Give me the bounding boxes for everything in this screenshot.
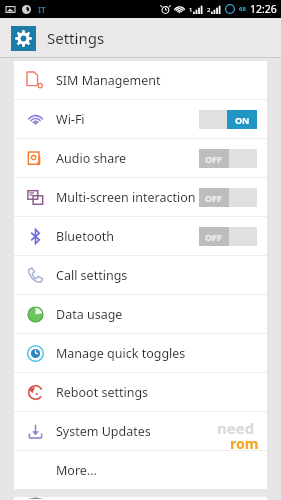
staticText: IT: [38, 4, 46, 15]
staticText: System Updates: [56, 423, 151, 440]
button[interactable]: SIM Management: [14, 61, 267, 100]
staticText: 1: [189, 6, 193, 14]
staticText: Call settings: [56, 267, 128, 284]
staticText: ON: [235, 114, 250, 126]
button[interactable]: Reboot settings: [14, 373, 267, 412]
staticText: Audio share: [56, 150, 127, 167]
staticText: Reboot settings: [56, 384, 149, 401]
staticText: More...: [56, 462, 97, 479]
button[interactable]: System Updates: [14, 412, 267, 451]
staticText: Data usage: [56, 306, 123, 323]
staticText: Manage quick toggles: [56, 345, 186, 362]
staticText: need: [217, 418, 255, 438]
staticText: 68: [239, 5, 246, 13]
staticText: OFF: [205, 192, 223, 204]
button[interactable]: More...: [14, 451, 267, 489]
button[interactable]: Audio share: [14, 139, 267, 178]
staticText: 12:26: [250, 2, 277, 16]
button[interactable]: Wi-Fi: [14, 100, 267, 139]
staticText: rom: [230, 434, 259, 452]
button[interactable]: Manage quick toggles: [14, 334, 267, 373]
staticText: OFF: [205, 231, 223, 243]
staticText: Bluetooth: [56, 228, 115, 245]
staticText: 2: [207, 6, 211, 14]
staticText: Multi-screen interaction: [56, 189, 196, 206]
staticText: OFF: [205, 153, 223, 165]
button[interactable]: Call settings: [14, 256, 267, 295]
button[interactable]: Data usage: [14, 295, 267, 334]
staticText: Settings: [47, 28, 105, 48]
button[interactable]: Bluetooth: [14, 217, 267, 256]
staticText: Wi-Fi: [56, 111, 85, 128]
button[interactable]: Multi-screen interaction: [14, 178, 267, 217]
staticText: SIM Management: [56, 72, 161, 89]
button[interactable]: Home: [14, 497, 267, 500]
